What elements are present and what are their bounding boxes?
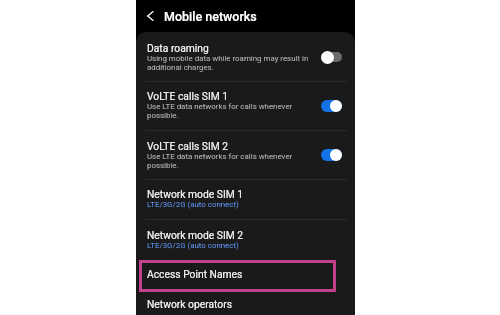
button[interactable]: Switch off: [321, 50, 342, 64]
button[interactable]: Network mode SIM 1: [136, 180, 355, 219]
button[interactable]: Switch on: [321, 99, 342, 113]
button[interactable]: VoLTE calls SIM 2: [136, 131, 355, 179]
staticText: Mobile networks: [164, 9, 257, 24]
button[interactable]: Data roaming: [136, 32, 355, 81]
staticText: VoLTE calls SIM 1: [147, 90, 229, 102]
staticText: Network mode SIM 1: [147, 188, 244, 200]
staticText: LTE/3G/2G (auto connect): [147, 241, 239, 250]
staticText: LTE/3G/2G (auto connect): [147, 200, 239, 209]
staticText: Data roaming: [147, 42, 209, 54]
staticText: VoLTE calls SIM 2: [147, 140, 229, 152]
button[interactable]: Back: [136, 0, 164, 32]
button[interactable]: Access Point Names: [136, 260, 355, 292]
button[interactable]: VoLTE calls SIM 1: [136, 82, 355, 130]
button[interactable]: Network mode SIM 2: [136, 220, 355, 260]
staticText: Network mode SIM 2: [147, 229, 244, 241]
staticText: Use LTE data networks for calls whenever…: [147, 152, 293, 170]
staticText: Access Point Names: [147, 268, 243, 280]
button[interactable]: Switch on: [321, 148, 342, 162]
staticText: Use LTE data networks for calls whenever…: [147, 102, 293, 120]
staticText: Using mobile data while roaming may resu…: [147, 54, 309, 72]
staticText: Network operators: [147, 298, 232, 310]
button[interactable]: Network operators: [136, 292, 355, 315]
